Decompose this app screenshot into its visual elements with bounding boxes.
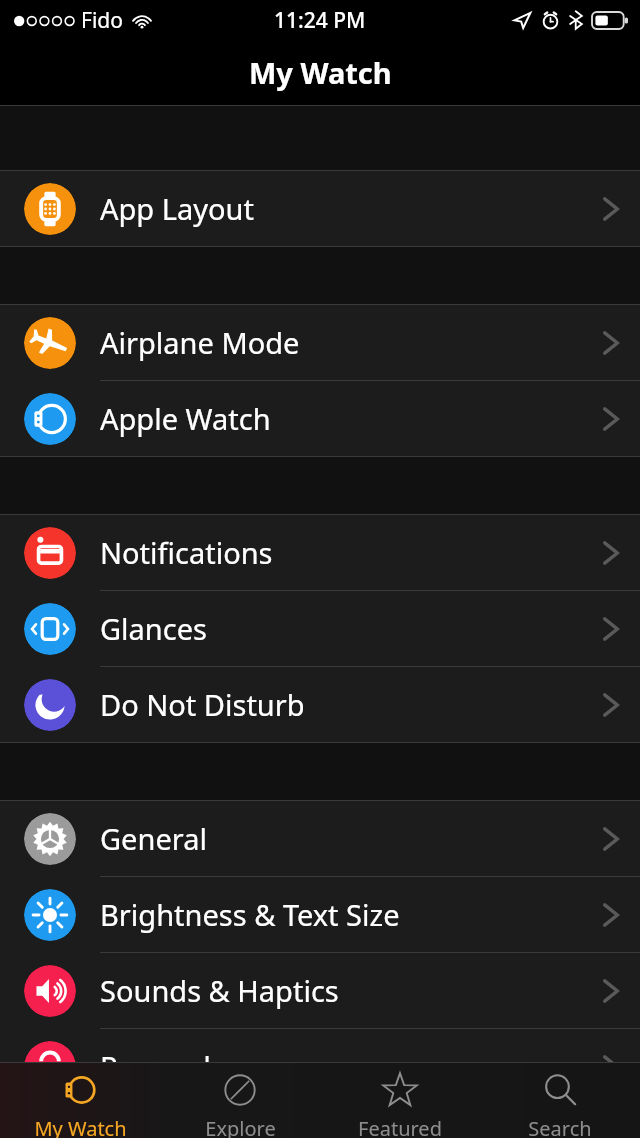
staticText: General [100, 819, 207, 858]
staticText: Do Not Disturb [100, 685, 305, 724]
staticText: Apple Watch [100, 399, 271, 438]
staticText: My Watch [34, 1115, 127, 1138]
staticText: Airplane Mode [100, 323, 300, 362]
button[interactable]: Passcode [0, 1029, 640, 1104]
button[interactable]: Notifications [0, 515, 640, 590]
staticText: Explore [205, 1115, 276, 1138]
button[interactable]: Glances [0, 591, 640, 666]
button[interactable]: App Layout [0, 171, 640, 246]
button[interactable]: Search [480, 1063, 640, 1138]
staticText: Notifications [100, 533, 273, 572]
staticText: 11:24 PM [274, 6, 366, 35]
button[interactable]: Brightness & Text Size [0, 877, 640, 952]
staticText: Search [528, 1115, 592, 1138]
staticText: App Layout [100, 189, 254, 228]
staticText: Glances [100, 609, 207, 648]
button[interactable]: Do Not Disturb [0, 667, 640, 742]
staticText: Sounds & Haptics [100, 971, 339, 1010]
staticText: Featured [358, 1115, 442, 1138]
button[interactable]: Sounds & Haptics [0, 953, 640, 1028]
staticText: Passcode [100, 1047, 228, 1086]
button[interactable]: General [0, 801, 640, 876]
button[interactable]: Airplane Mode [0, 305, 640, 380]
button[interactable]: Explore [160, 1063, 320, 1138]
staticText: Brightness & Text Size [100, 895, 400, 934]
staticText: My Watch [249, 53, 392, 92]
button[interactable]: Featured [320, 1063, 480, 1138]
button[interactable]: Apple Watch [0, 381, 640, 456]
staticText: Fido [81, 6, 123, 35]
button[interactable]: My Watch [0, 1063, 160, 1138]
